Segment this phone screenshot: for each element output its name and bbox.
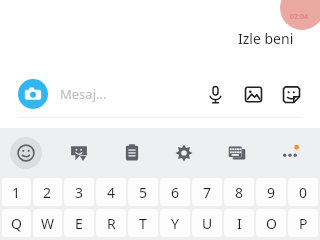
button[interactable]: More options — [274, 137, 306, 169]
staticText: 5 — [139, 183, 148, 202]
button[interactable]: GIF stickers — [63, 137, 95, 169]
staticText: O — [266, 214, 277, 233]
button[interactable]: 4 — [96, 178, 126, 206]
button[interactable]: Camera — [18, 79, 48, 109]
button[interactable]: 5 — [128, 178, 158, 206]
button[interactable]: Recording timer — [280, 0, 320, 30]
staticText: 02:04 — [290, 12, 308, 22]
staticText: W — [41, 214, 55, 233]
button[interactable]: O — [256, 209, 286, 237]
button[interactable]: Emoji — [10, 137, 42, 169]
staticText: 0 — [299, 183, 308, 202]
button[interactable]: 1 — [2, 178, 31, 206]
button[interactable]: Voice message — [200, 79, 230, 109]
staticText: Mesaj... — [60, 85, 107, 103]
button[interactable]: Clipboard — [116, 137, 148, 169]
button[interactable]: 7 — [192, 178, 222, 206]
button[interactable]: W — [33, 209, 62, 237]
button[interactable]: R — [96, 209, 126, 237]
button[interactable]: Y — [160, 209, 190, 237]
button[interactable]: 9 — [256, 178, 286, 206]
button[interactable]: Keyboard modes — [221, 137, 253, 169]
staticText: Q — [11, 214, 22, 233]
staticText: 7 — [203, 183, 212, 202]
staticText: E — [75, 214, 83, 233]
button[interactable]: E — [64, 209, 94, 237]
staticText: U — [202, 214, 213, 233]
button[interactable]: Stickers — [276, 79, 306, 109]
staticText: 8 — [235, 183, 244, 202]
button[interactable]: 3 — [64, 178, 94, 206]
button[interactable]: I — [224, 209, 254, 237]
staticText: 1 — [12, 183, 21, 202]
button[interactable]: Gallery — [238, 79, 268, 109]
staticText: 6 — [171, 183, 180, 202]
button[interactable]: 8 — [224, 178, 254, 206]
button[interactable]: P — [288, 209, 318, 237]
staticText: Y — [171, 214, 179, 233]
staticText: R — [107, 214, 116, 233]
button[interactable]: T — [128, 209, 158, 237]
button[interactable]: 2 — [33, 178, 62, 206]
staticText: Izle beni — [238, 29, 294, 48]
staticText: 9 — [267, 183, 276, 202]
button[interactable]: Q — [2, 209, 31, 237]
button[interactable]: 0 — [288, 178, 318, 206]
button[interactable]: Settings — [168, 137, 200, 169]
staticText: 3 — [75, 183, 84, 202]
staticText: T — [139, 214, 147, 233]
staticText: 2 — [43, 183, 52, 202]
staticText: I — [237, 214, 242, 233]
button[interactable]: 6 — [160, 178, 190, 206]
staticText: 4 — [107, 183, 116, 202]
staticText: P — [299, 214, 308, 233]
button[interactable]: U — [192, 209, 222, 237]
